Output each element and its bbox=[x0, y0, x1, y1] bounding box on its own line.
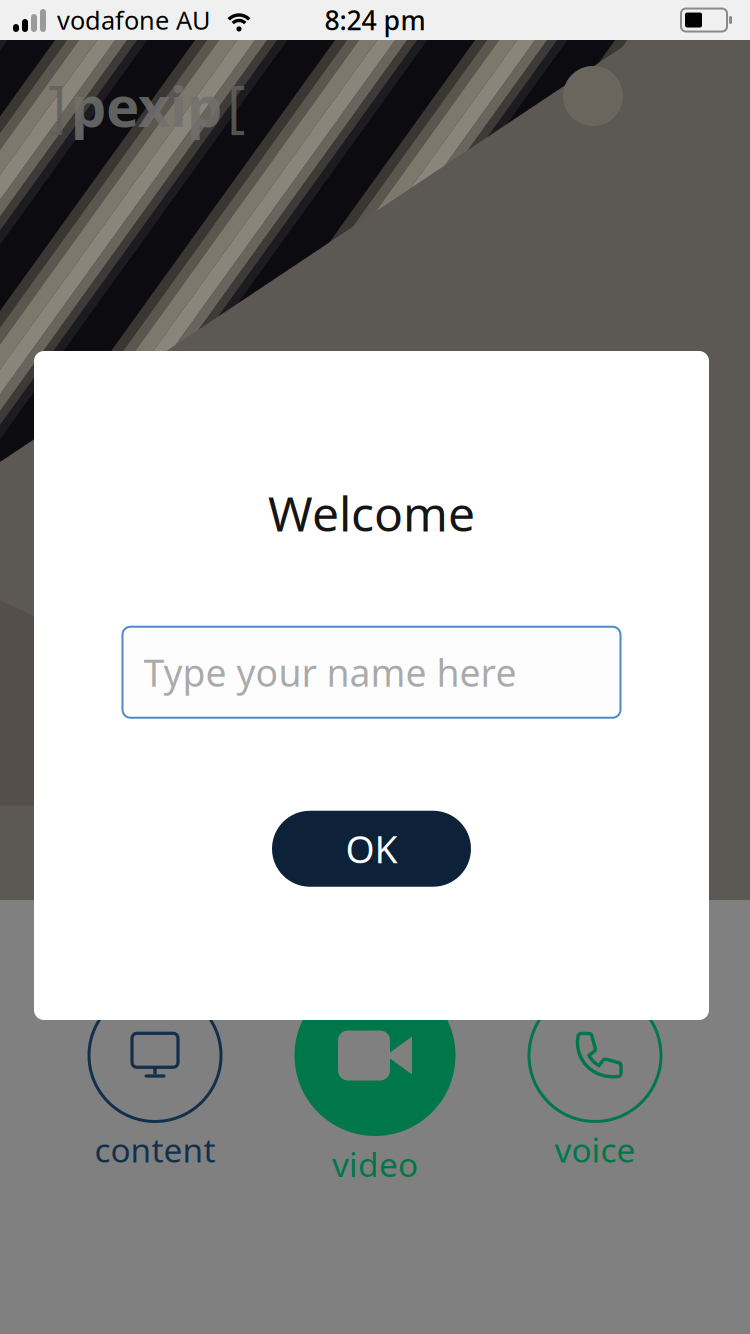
staticText: 8:24 pm bbox=[324, 2, 425, 38]
staticText: video bbox=[332, 1142, 418, 1186]
staticText: ] bbox=[48, 68, 66, 142]
staticText: pexip bbox=[71, 68, 222, 142]
button[interactable]: voice bbox=[500, 989, 690, 1172]
staticText: content bbox=[94, 1127, 215, 1172]
staticText: OK bbox=[345, 824, 397, 874]
staticText: voice bbox=[554, 1127, 635, 1172]
staticText: Type your name here bbox=[143, 647, 516, 697]
button[interactable]: video bbox=[280, 975, 470, 1186]
staticText: Welcome bbox=[268, 481, 475, 545]
staticText: [ bbox=[227, 68, 245, 142]
staticText: vodafone AU bbox=[57, 3, 211, 37]
button[interactable]: content bbox=[60, 989, 250, 1172]
button[interactable]: OK bbox=[272, 811, 471, 887]
button[interactable]: Type your name here bbox=[122, 627, 620, 718]
